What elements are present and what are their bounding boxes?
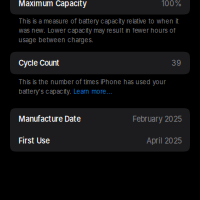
staticText: usage between charges. [18, 36, 93, 44]
staticText: This is a measure of battery capacity re… [18, 17, 178, 25]
staticText: Manufacture Date [18, 114, 80, 123]
staticText: April 2025 [146, 136, 181, 145]
staticText: battery's capacity. [18, 88, 73, 95]
staticText: 39 [171, 59, 181, 67]
staticText: Learn more... [73, 88, 112, 95]
staticText: February 2025 [132, 114, 181, 123]
button[interactable]: Manufacture Date [10, 108, 190, 130]
staticText: 100% [161, 0, 181, 8]
staticText: was new. Lower capacity may result in fe… [18, 27, 175, 34]
button[interactable]: First Use [10, 130, 190, 152]
button[interactable]: Cycle Count [10, 52, 190, 74]
staticText: Maximum Capacity [18, 0, 86, 8]
staticText: First Use [18, 136, 49, 145]
staticText: This is the number of times iPhone has u… [18, 78, 165, 86]
staticText: Cycle Count [18, 59, 59, 67]
button[interactable]: Maximum Capacity [10, 0, 190, 14]
button[interactable]: Learn more... [73, 88, 112, 95]
